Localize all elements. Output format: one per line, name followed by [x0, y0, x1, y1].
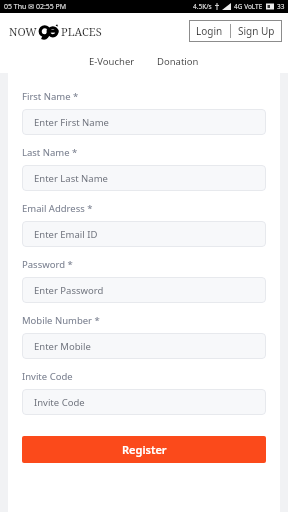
- staticText: E-Voucher: [89, 55, 135, 68]
- button[interactable]: Now Go Places home: [9, 24, 102, 39]
- staticText: Email Address *: [22, 202, 93, 215]
- button[interactable]: Register: [22, 436, 266, 463]
- staticText: Enter Last Name: [34, 172, 108, 185]
- button[interactable]: Enter First Name: [22, 109, 266, 135]
- staticText: Enter Mobile: [34, 340, 91, 353]
- staticText: Enter Email ID: [34, 228, 98, 241]
- button[interactable]: Enter Email ID: [22, 221, 266, 247]
- staticText: Register: [122, 442, 167, 457]
- staticText: 33: [277, 2, 285, 11]
- staticText: Password *: [22, 258, 73, 271]
- staticText: 05 Thu ✉ 02:55 PM: [4, 2, 67, 12]
- button[interactable]: Invite Code: [22, 389, 266, 415]
- staticText: Invite Code: [22, 370, 73, 383]
- staticText: 4G VoLTE: [234, 2, 263, 11]
- staticText: Enter Password: [34, 284, 104, 297]
- staticText: 4.5K/s: [193, 2, 212, 11]
- button[interactable]: E-Voucher: [83, 52, 141, 71]
- button[interactable]: Donation: [151, 52, 205, 71]
- staticText: First Name *: [22, 90, 79, 103]
- staticText: Invite Code: [34, 396, 85, 409]
- staticText: Sign Up: [238, 24, 275, 38]
- button[interactable]: Login: [189, 20, 230, 42]
- staticText: Enter First Name: [34, 116, 109, 129]
- staticText: Login: [196, 24, 223, 38]
- staticText: NOW: [9, 24, 37, 39]
- button[interactable]: Enter Password: [22, 277, 266, 303]
- staticText: Mobile Number *: [22, 314, 100, 327]
- staticText: Last Name *: [22, 146, 78, 159]
- button[interactable]: Sign Up: [231, 20, 282, 42]
- staticText: PLACES: [61, 24, 102, 39]
- button[interactable]: Enter Last Name: [22, 165, 266, 191]
- staticText: Donation: [157, 55, 199, 68]
- button[interactable]: Enter Mobile: [22, 333, 266, 359]
